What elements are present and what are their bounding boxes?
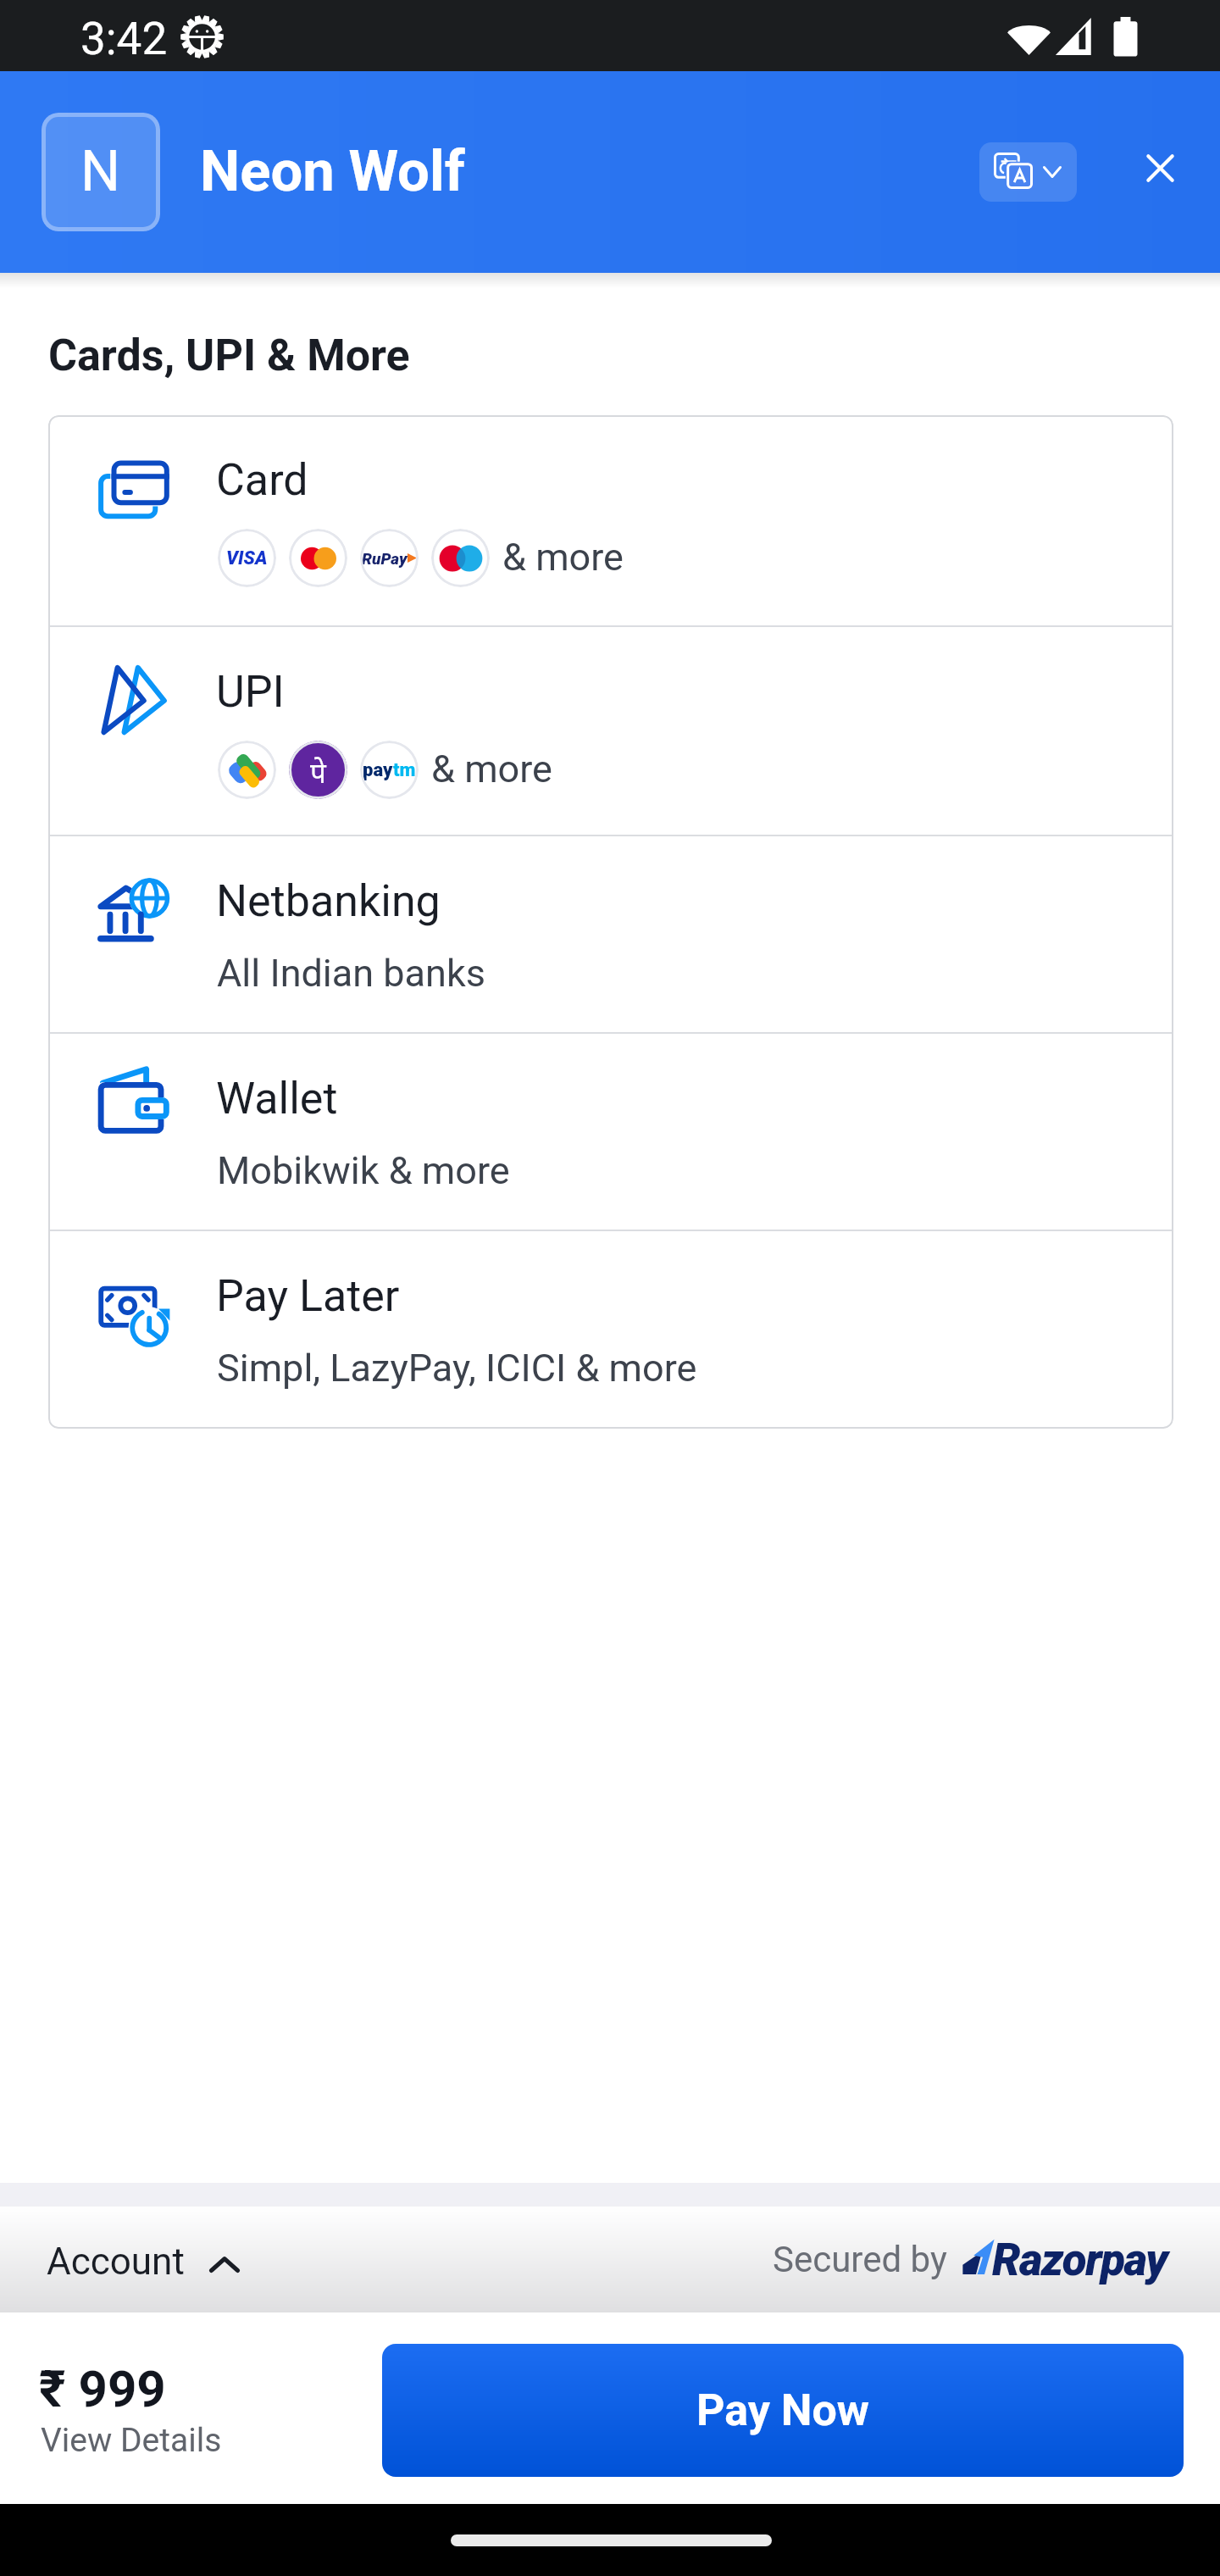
staticText: & more bbox=[502, 535, 624, 580]
staticText: Razorpay bbox=[992, 2234, 1167, 2286]
staticText: View Details bbox=[41, 2421, 222, 2460]
staticText: Simpl, LazyPay, ICICI & more bbox=[217, 1346, 697, 1391]
staticText: पे bbox=[310, 753, 326, 791]
staticText: Pay Now bbox=[696, 2384, 870, 2436]
button[interactable]: Account bbox=[34, 2225, 256, 2295]
staticText: Account bbox=[47, 2240, 185, 2284]
staticText: 3:42 bbox=[80, 13, 168, 65]
button[interactable]: Netbanking bbox=[48, 836, 1173, 1032]
staticText: & more bbox=[431, 747, 552, 791]
button[interactable]: Pay Now bbox=[382, 2344, 1184, 2477]
staticText: RuPay bbox=[362, 549, 408, 568]
staticText: tm bbox=[393, 759, 416, 781]
staticText: pay bbox=[363, 759, 393, 781]
staticText: Mobikwik & more bbox=[217, 1148, 510, 1193]
staticText: N bbox=[80, 139, 121, 204]
staticText: All Indian banks bbox=[217, 951, 485, 996]
button[interactable]: Card bbox=[48, 415, 1173, 625]
button[interactable]: Wallet bbox=[48, 1034, 1173, 1230]
staticText: Secured by bbox=[773, 2239, 947, 2280]
staticText: UPI bbox=[216, 666, 285, 718]
staticText: Card bbox=[216, 454, 308, 506]
button[interactable]: UPI bbox=[48, 627, 1173, 835]
staticText: Cards, UPI & More bbox=[48, 330, 410, 381]
staticText: ₹ 999 bbox=[39, 2359, 166, 2418]
staticText: Wallet bbox=[216, 1073, 338, 1124]
staticText: Pay Later bbox=[216, 1270, 400, 1322]
button[interactable]: Close bbox=[1125, 133, 1195, 203]
button[interactable]: Pay Later bbox=[48, 1231, 1173, 1429]
staticText: Neon Wolf bbox=[200, 138, 465, 205]
button[interactable]: Change language bbox=[979, 142, 1077, 202]
staticText: VISA bbox=[226, 547, 268, 569]
staticText: Netbanking bbox=[216, 875, 441, 927]
